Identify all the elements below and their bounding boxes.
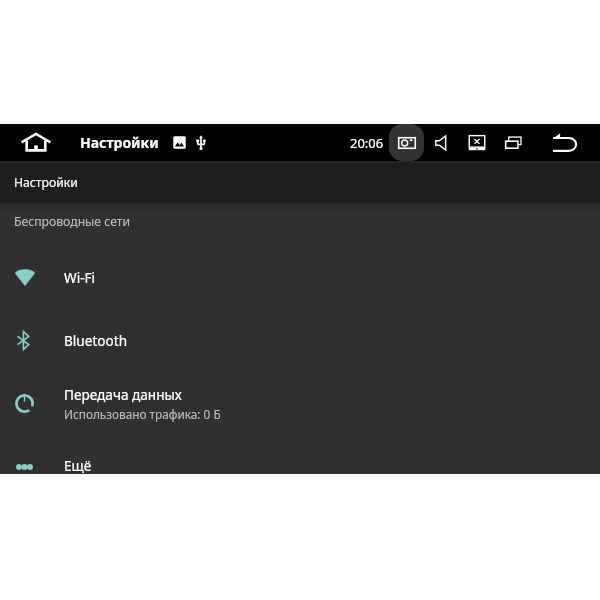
button[interactable]: Wi-Fi — [0, 246, 600, 308]
staticText: Настройки — [80, 133, 159, 152]
staticText: Bluetooth — [64, 331, 128, 350]
button[interactable]: Screenshot — [389, 124, 424, 161]
staticText: Использовано трафика: 0 Б — [64, 406, 221, 422]
staticText: Передача данных — [64, 385, 182, 404]
button[interactable]: Volume — [431, 124, 452, 161]
button[interactable]: Back — [545, 124, 585, 161]
button[interactable]: Ещё — [0, 434, 600, 496]
staticText: Беспроводные сети — [14, 213, 130, 230]
staticText: 20:06 — [350, 134, 384, 152]
button[interactable]: Bluetooth — [0, 309, 600, 371]
staticText: Wi-Fi — [64, 268, 96, 287]
button[interactable]: Настройки — [74, 124, 214, 161]
button[interactable]: Настройки — [0, 161, 600, 203]
staticText: Ещё — [64, 456, 92, 475]
button[interactable]: Home — [0, 124, 72, 161]
staticText: Настройки — [14, 174, 78, 191]
button[interactable]: Cast off — [464, 124, 490, 161]
button[interactable]: Передача данных — [0, 372, 600, 434]
button[interactable]: Recent apps — [500, 124, 526, 161]
